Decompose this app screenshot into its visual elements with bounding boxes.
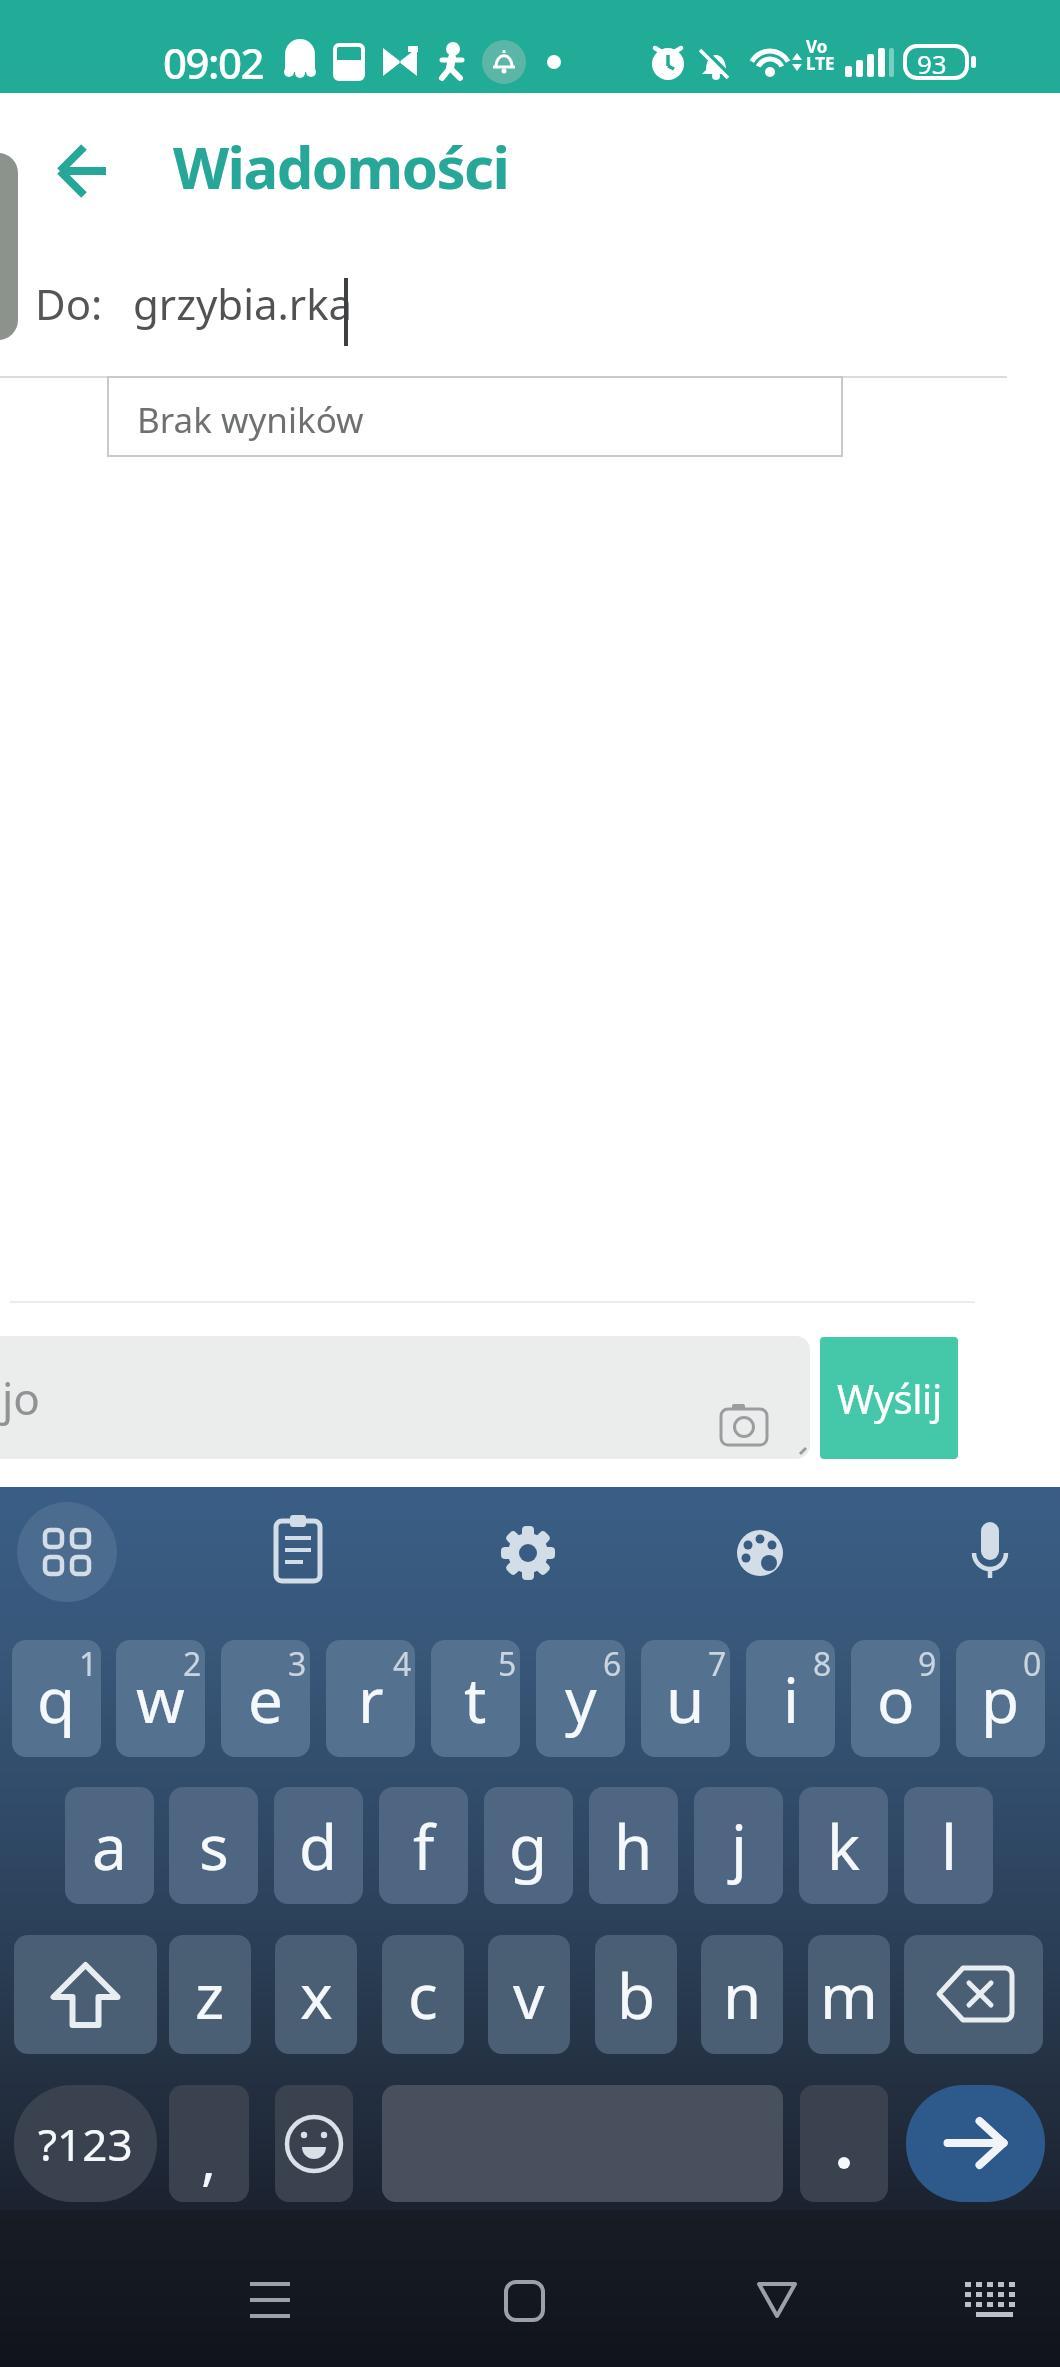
button[interactable] — [737, 2260, 817, 2340]
button[interactable]: d — [274, 1787, 363, 1904]
button[interactable] — [169, 2085, 249, 2202]
button[interactable]: f — [379, 1787, 468, 1904]
staticText: Brak wyników — [137, 396, 364, 444]
button[interactable]: o — [851, 1640, 940, 1757]
staticText: Wiadomości — [173, 127, 509, 206]
button[interactable]: p — [956, 1640, 1045, 1757]
button[interactable]: b — [595, 1935, 677, 2054]
staticText: c — [408, 1953, 438, 2037]
button[interactable]: ?123 — [14, 2085, 157, 2202]
staticText: w — [136, 1657, 185, 1741]
button[interactable]: s — [169, 1787, 258, 1904]
button[interactable] — [230, 2260, 310, 2340]
staticText: d — [299, 1804, 338, 1888]
button[interactable]: i — [746, 1640, 835, 1757]
staticText: j — [731, 1804, 747, 1888]
button[interactable]: k — [799, 1787, 888, 1904]
staticText: grzybia.rka — [133, 275, 353, 332]
staticText: b — [617, 1953, 656, 2037]
staticText: u — [666, 1657, 705, 1741]
staticText: p — [981, 1657, 1020, 1741]
button[interactable] — [950, 2260, 1040, 2340]
staticText: Vo — [806, 35, 828, 58]
staticText: jo — [2, 1368, 40, 1428]
staticText: 2 — [183, 1642, 202, 1686]
button[interactable] — [483, 1508, 573, 1598]
staticText: 09:02 — [163, 34, 264, 91]
button[interactable]: e — [221, 1640, 310, 1757]
button[interactable] — [253, 1508, 343, 1598]
button[interactable]: Wyślij — [820, 1337, 958, 1459]
button[interactable]: w — [116, 1640, 205, 1757]
staticText: ?123 — [38, 2114, 133, 2174]
button[interactable]: c — [382, 1935, 464, 2054]
staticText: q — [37, 1657, 76, 1741]
staticText: 7 — [708, 1642, 727, 1686]
button[interactable] — [14, 1935, 157, 2054]
staticText: f — [413, 1804, 435, 1888]
staticText: 9 — [918, 1642, 937, 1686]
button[interactable]: x — [275, 1935, 357, 2054]
button[interactable]: u — [641, 1640, 730, 1757]
staticText: g — [509, 1804, 548, 1888]
staticText: k — [827, 1804, 861, 1888]
button[interactable]: m — [808, 1935, 890, 2054]
staticText: z — [195, 1953, 225, 2037]
staticText: x — [300, 1953, 333, 2037]
button[interactable]: n — [701, 1935, 783, 2054]
button[interactable]: r — [326, 1640, 415, 1757]
button[interactable] — [904, 1935, 1043, 2054]
staticText: o — [877, 1657, 915, 1741]
staticText: 0 — [1023, 1642, 1042, 1686]
staticText: t — [464, 1657, 487, 1741]
button[interactable]: a — [65, 1787, 154, 1904]
staticText: l — [941, 1804, 957, 1888]
button[interactable]: g — [484, 1787, 573, 1904]
staticText: y — [565, 1657, 597, 1741]
staticText: r — [358, 1657, 384, 1741]
staticText: 6 — [603, 1642, 622, 1686]
button[interactable] — [17, 1502, 117, 1602]
button[interactable] — [40, 128, 130, 214]
staticText: m — [820, 1953, 878, 2037]
staticText: s — [199, 1804, 229, 1888]
button[interactable]: Do: — [0, 255, 1060, 365]
staticText: 1 — [79, 1642, 98, 1686]
staticText: Do: — [35, 275, 103, 332]
button[interactable] — [715, 1508, 805, 1598]
staticText: 3 — [288, 1642, 307, 1686]
button[interactable]: Brak wyników — [107, 376, 843, 457]
button[interactable]: z — [169, 1935, 251, 2054]
staticText: , — [201, 2120, 217, 2196]
staticText: i — [783, 1657, 799, 1741]
staticText: 4 — [393, 1642, 412, 1686]
button[interactable] — [485, 2260, 565, 2340]
button[interactable]: q — [12, 1640, 101, 1757]
button[interactable] — [275, 2085, 353, 2202]
staticText: LTE — [806, 52, 835, 75]
staticText: n — [723, 1953, 762, 2037]
staticText: 8 — [813, 1642, 832, 1686]
button[interactable]: h — [589, 1787, 678, 1904]
button[interactable]: t — [431, 1640, 520, 1757]
button[interactable]: l — [904, 1787, 993, 1904]
button[interactable]: y — [536, 1640, 625, 1757]
staticText: e — [248, 1657, 283, 1741]
button[interactable]: v — [488, 1935, 570, 2054]
staticText: h — [614, 1804, 653, 1888]
staticText: Wyślij — [837, 1371, 942, 1425]
button[interactable] — [906, 2085, 1045, 2202]
staticText: a — [92, 1804, 127, 1888]
button[interactable] — [800, 2085, 888, 2202]
staticText: 5 — [498, 1642, 517, 1686]
button[interactable] — [945, 1508, 1035, 1598]
staticText: v — [513, 1953, 545, 2037]
staticText: 93 — [917, 46, 947, 81]
button[interactable]: jo — [0, 1336, 810, 1459]
button[interactable]: j — [694, 1787, 783, 1904]
